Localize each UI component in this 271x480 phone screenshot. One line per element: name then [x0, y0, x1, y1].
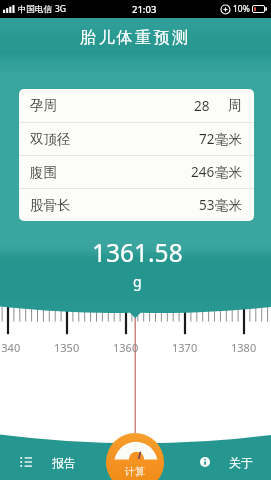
staticText: 毫米	[215, 131, 242, 148]
staticText: 计算	[125, 465, 145, 478]
staticText: 10%	[233, 3, 250, 15]
staticText: 毫米	[215, 164, 242, 181]
staticText: 72	[199, 130, 215, 148]
staticText: 胎儿体重预测	[80, 28, 191, 46]
staticText: 毫米	[215, 197, 242, 214]
staticText: 1340	[0, 340, 21, 355]
staticText: 3G	[55, 3, 67, 15]
staticText: 腹围	[30, 164, 57, 181]
button[interactable]: 孕周	[19, 89, 254, 122]
staticText: 关于	[229, 455, 253, 470]
staticText: 246	[191, 163, 215, 181]
staticText: 28	[194, 97, 210, 115]
staticText: 报告	[52, 455, 76, 470]
staticText: 1380	[231, 340, 257, 355]
button[interactable]: 计算	[106, 433, 164, 480]
staticText: g	[133, 272, 142, 291]
button[interactable]: 腹围	[19, 155, 254, 188]
button[interactable]: 双顶径	[19, 122, 254, 155]
staticText: 1370	[172, 340, 198, 355]
button[interactable]: 关于	[188, 449, 266, 475]
staticText: 1350	[54, 340, 80, 355]
staticText: 53	[199, 196, 215, 214]
staticText: 孕周	[30, 97, 57, 114]
staticText: 中国电信	[18, 4, 52, 15]
staticText: 1360	[113, 340, 139, 355]
button[interactable]: 报告	[8, 449, 88, 475]
staticText: 周	[228, 97, 242, 114]
staticText: 1361.58	[92, 236, 183, 269]
button[interactable]: 股骨长	[19, 188, 254, 221]
staticText: 21:03	[132, 3, 157, 16]
staticText: 双顶径	[30, 131, 71, 148]
staticText: 股骨长	[30, 197, 71, 214]
